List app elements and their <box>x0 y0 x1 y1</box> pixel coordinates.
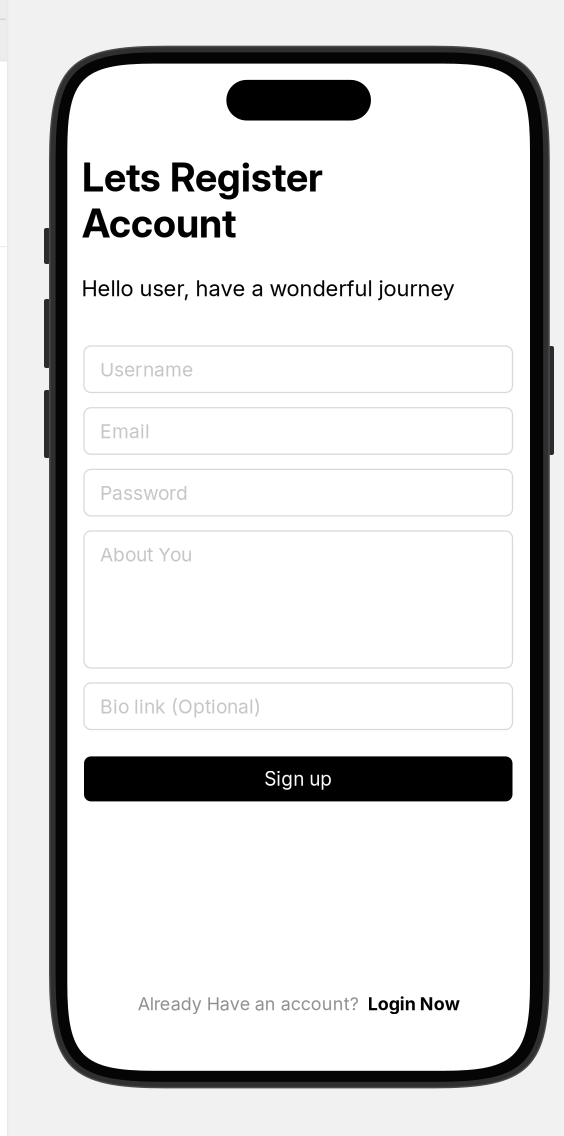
staticText: Already Have an account? <box>138 993 359 1015</box>
button[interactable]: Login Now <box>359 993 460 1015</box>
staticText: Bio link (Optional) <box>100 695 261 718</box>
button[interactable]: Bio link (Optional) <box>84 683 512 729</box>
staticText: Login Now <box>368 993 460 1015</box>
staticText: Password <box>100 481 188 505</box>
button[interactable]: Sign up <box>84 756 512 801</box>
button[interactable]: Username <box>84 346 512 392</box>
button[interactable]: Password <box>84 469 512 516</box>
staticText: Account <box>82 199 236 247</box>
staticText: Sign up <box>264 767 332 790</box>
staticText: About You <box>100 543 192 566</box>
button[interactable]: About You <box>84 531 512 668</box>
button[interactable]: Email <box>84 408 512 454</box>
staticText: Lets Register <box>82 153 323 201</box>
staticText: Username <box>100 358 193 381</box>
staticText: Email <box>100 420 150 443</box>
staticText: Hello user, have a wonderful journey <box>81 275 454 302</box>
